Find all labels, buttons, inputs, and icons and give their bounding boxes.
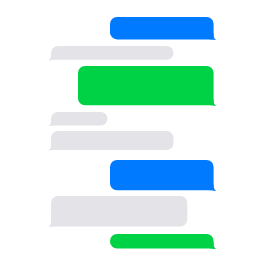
button[interactable]: Sent message <box>107 17 217 41</box>
button[interactable]: Received message <box>48 131 177 152</box>
button[interactable]: Received message <box>48 46 177 62</box>
button[interactable]: Received message <box>48 196 190 229</box>
button[interactable]: Sent message <box>107 160 217 192</box>
button[interactable]: Sent SMS message <box>107 234 217 251</box>
button[interactable]: Received message <box>48 112 111 127</box>
button[interactable]: Sent SMS message <box>75 66 217 107</box>
